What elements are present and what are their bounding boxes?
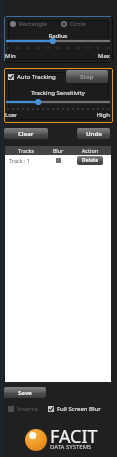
button[interactable]: Rectangle [10,20,47,28]
staticText: Tracks [5,147,47,154]
button[interactable]: Tracking Sensitivity [4,89,112,97]
button[interactable]: Undo [77,128,110,139]
staticText: Delete [82,157,99,164]
button[interactable]: Track : 1 [5,155,111,166]
staticText: Action [69,147,111,154]
staticText: Save [18,389,32,397]
staticText: Track : 1 [9,157,47,164]
button[interactable]: Full Screen Blur [48,404,101,413]
staticText: Full Screen Blur [57,405,101,413]
button[interactable]: Inverse [8,404,38,413]
button[interactable]: Circle [61,20,86,28]
button[interactable]: Stop [66,70,108,83]
staticText: Inverse [17,405,38,413]
staticText: Low [5,111,17,119]
staticText: Rectangle [19,20,47,28]
staticText: FACIT [50,424,98,449]
button[interactable]: Delete [77,156,103,165]
staticText: Undo [86,130,102,138]
staticText: Auto Tracking [17,73,56,81]
staticText: Max [80,52,110,60]
staticText: Stop [80,73,94,81]
staticText: High [80,111,110,119]
staticText: Blur [47,147,69,154]
button[interactable]: Save [4,387,46,398]
staticText: Clear [18,130,34,138]
button[interactable]: Clear [4,128,48,139]
staticText: Min [5,52,16,60]
button[interactable]: Auto Tracking [8,72,56,81]
button[interactable]: Radius [4,32,112,40]
button[interactable] [6,39,110,52]
button[interactable] [6,100,110,113]
staticText: Circle [70,20,86,28]
staticText: DATA SYSTEMS [50,443,92,451]
